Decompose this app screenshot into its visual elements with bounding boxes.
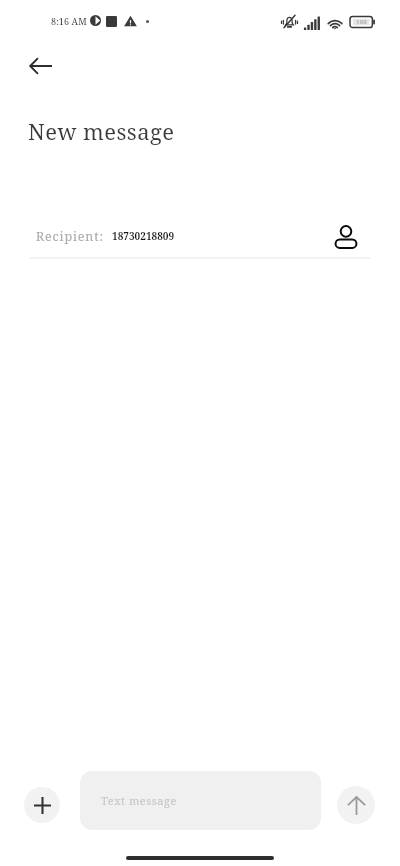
button[interactable]: Recipient: xyxy=(0,213,400,259)
button[interactable]: Add attachment xyxy=(24,787,60,823)
staticText: Text message xyxy=(101,793,177,808)
button[interactable]: Back xyxy=(20,46,60,86)
staticText: Recipient: xyxy=(36,228,104,245)
button[interactable]: Text message xyxy=(80,771,321,830)
staticText: 8:16 AM xyxy=(51,15,87,27)
button[interactable]: Choose contact xyxy=(326,217,366,257)
button[interactable]: Send xyxy=(337,786,375,824)
staticText: 100 xyxy=(356,18,367,26)
staticText: 18730218809 xyxy=(112,229,175,243)
staticText: New message xyxy=(28,116,175,146)
